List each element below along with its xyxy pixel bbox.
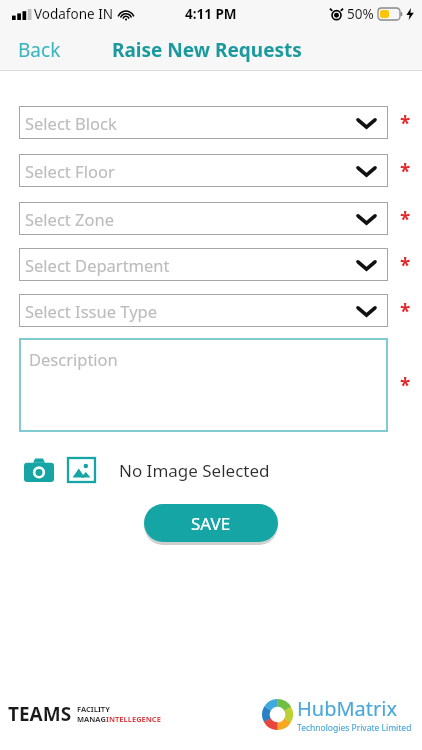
staticText: *: [400, 206, 411, 232]
staticText: *: [400, 372, 411, 398]
staticText: *: [400, 252, 411, 278]
staticText: *: [400, 110, 411, 136]
button[interactable]: Select Floor: [19, 154, 388, 187]
staticText: 50%: [347, 5, 374, 23]
staticText: No Image Selected: [119, 459, 270, 482]
staticText: Select Block: [25, 112, 117, 134]
staticText: Raise New Requests: [112, 37, 302, 63]
button[interactable]: Select Department: [19, 248, 388, 281]
button[interactable]: Back: [0, 31, 75, 69]
staticText: *: [400, 298, 411, 324]
button[interactable]: Description: [19, 338, 388, 432]
button[interactable]: Pick image from gallery: [66, 456, 97, 484]
button[interactable]: Select Block: [19, 106, 388, 139]
staticText: *: [400, 158, 411, 184]
staticText: Select Issue Type: [25, 300, 157, 322]
staticText: Technologies Private Limited: [297, 722, 412, 734]
staticText: HubMatrix: [297, 695, 398, 722]
staticText: Select Floor: [25, 160, 115, 182]
staticText: FACILITY: [77, 704, 110, 714]
staticText: TEAMS: [8, 701, 72, 727]
staticText: INTELLEGENCE: [106, 714, 161, 724]
staticText: 4:11 PM: [185, 5, 237, 23]
staticText: Select Zone: [25, 208, 115, 230]
staticText: Select Department: [25, 254, 170, 276]
button[interactable]: SAVE: [144, 504, 278, 542]
button[interactable]: Take photo with camera: [22, 456, 56, 484]
staticText: Description: [29, 348, 118, 370]
staticText: Vodafone IN: [34, 5, 113, 23]
staticText: Back: [18, 37, 61, 63]
staticText: MANAG: [77, 714, 106, 724]
button[interactable]: Select Zone: [19, 202, 388, 235]
button[interactable]: Select Issue Type: [19, 294, 388, 327]
staticText: SAVE: [191, 512, 231, 535]
